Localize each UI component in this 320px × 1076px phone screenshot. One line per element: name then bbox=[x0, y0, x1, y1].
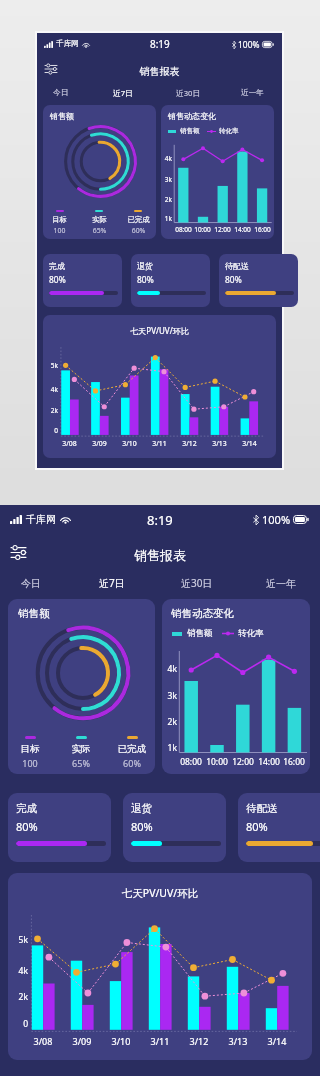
staticText: 退货 bbox=[137, 261, 154, 271]
staticText: 80% bbox=[49, 274, 66, 285]
staticText: 3/14 bbox=[237, 439, 262, 448]
staticText: 近7日 bbox=[113, 88, 133, 98]
staticText: 12:00 bbox=[229, 756, 257, 768]
staticText: 销售额 bbox=[180, 127, 200, 135]
button[interactable]: 待配送 bbox=[238, 793, 320, 862]
staticText: 近7日 bbox=[99, 576, 125, 590]
staticText: 销售报表 bbox=[0, 547, 320, 563]
staticText: 七天PV/UV/环比 bbox=[8, 886, 312, 900]
staticText: 3/14 bbox=[261, 1035, 293, 1047]
button[interactable]: 今日 bbox=[41, 84, 81, 102]
staticText: 转化率 bbox=[238, 628, 264, 639]
staticText: 80% bbox=[246, 819, 268, 834]
button[interactable]: 今日 bbox=[5, 571, 57, 595]
staticText: 4k bbox=[47, 385, 58, 394]
button[interactable]: 退货 bbox=[123, 793, 226, 862]
staticText: 3/12 bbox=[177, 439, 202, 448]
staticText: 5k bbox=[47, 361, 58, 370]
button[interactable]: 近30日 bbox=[171, 571, 223, 595]
staticText: 100% bbox=[238, 39, 260, 50]
staticText: 目标 bbox=[8, 743, 54, 755]
staticText: 4k bbox=[13, 965, 28, 977]
button[interactable]: 近一年 bbox=[255, 571, 307, 595]
button[interactable]: 完成 bbox=[8, 793, 111, 862]
staticText: 千库网 bbox=[56, 39, 79, 49]
staticText: 10:00 bbox=[192, 225, 213, 234]
staticText: 65% bbox=[57, 757, 105, 769]
staticText: 3/10 bbox=[117, 439, 142, 448]
staticText: 08:00 bbox=[177, 756, 205, 768]
staticText: 销售额 bbox=[50, 111, 75, 121]
staticText: 3k bbox=[162, 175, 172, 184]
staticText: 待配送 bbox=[225, 261, 250, 271]
staticText: 千库网 bbox=[26, 513, 56, 526]
staticText: 3/08 bbox=[27, 1035, 59, 1047]
staticText: 08:00 bbox=[173, 225, 194, 234]
staticText: 0 bbox=[47, 426, 58, 435]
staticText: 2k bbox=[47, 406, 58, 415]
staticText: 销售额 bbox=[187, 628, 213, 639]
staticText: 销售报表 bbox=[37, 65, 282, 78]
staticText: 3/13 bbox=[207, 439, 232, 448]
staticText: 16:00 bbox=[252, 225, 273, 234]
staticText: 3/08 bbox=[57, 439, 82, 448]
staticText: 目标 bbox=[43, 215, 78, 224]
staticText: 1k bbox=[162, 214, 172, 223]
staticText: 100% bbox=[262, 512, 291, 527]
staticText: 100 bbox=[8, 757, 54, 769]
staticText: 5k bbox=[13, 934, 28, 946]
button[interactable]: 完成 bbox=[43, 254, 122, 307]
staticText: 销售额 bbox=[18, 607, 50, 620]
staticText: 0 bbox=[13, 1018, 28, 1030]
staticText: 待配送 bbox=[246, 802, 278, 815]
staticText: 80% bbox=[137, 274, 154, 285]
staticText: 2k bbox=[163, 716, 177, 728]
staticText: 65% bbox=[81, 226, 118, 235]
button[interactable]: 销售动态变化 bbox=[161, 105, 274, 239]
staticText: 10:00 bbox=[203, 756, 231, 768]
staticText: 80% bbox=[16, 819, 38, 834]
staticText: 8:19 bbox=[147, 511, 173, 529]
staticText: 60% bbox=[120, 226, 156, 235]
staticText: 3k bbox=[163, 690, 177, 702]
button[interactable]: 销售动态变化 bbox=[162, 599, 310, 774]
staticText: 60% bbox=[108, 757, 155, 769]
staticText: 销售动态变化 bbox=[168, 111, 217, 121]
button[interactable]: 近7日 bbox=[86, 571, 138, 595]
staticText: 实际 bbox=[57, 743, 105, 755]
staticText: 16:00 bbox=[280, 756, 308, 768]
staticText: 3/09 bbox=[87, 439, 112, 448]
staticText: 近30日 bbox=[181, 576, 213, 590]
button[interactable]: 退货 bbox=[131, 254, 210, 307]
staticText: 今日 bbox=[53, 88, 69, 98]
staticText: 转化率 bbox=[219, 127, 239, 135]
staticText: 今日 bbox=[21, 577, 41, 590]
staticText: 4k bbox=[162, 154, 172, 163]
staticText: 3/09 bbox=[66, 1035, 98, 1047]
staticText: 8:19 bbox=[150, 37, 170, 51]
button[interactable]: 七天PV/UV/环比 bbox=[43, 315, 276, 458]
button[interactable]: 销售额 bbox=[43, 105, 156, 239]
staticText: 3/11 bbox=[147, 439, 172, 448]
staticText: 近30日 bbox=[176, 88, 201, 98]
button[interactable]: 近一年 bbox=[232, 84, 272, 102]
staticText: 100 bbox=[43, 226, 78, 235]
staticText: 3/10 bbox=[105, 1035, 137, 1047]
staticText: 完成 bbox=[16, 802, 37, 815]
staticText: 实际 bbox=[81, 215, 118, 224]
button[interactable]: 销售额 bbox=[8, 599, 155, 774]
button[interactable]: 七天PV/UV/环比 bbox=[8, 873, 312, 1060]
button[interactable]: Filter options bbox=[8, 542, 29, 563]
button[interactable]: 近30日 bbox=[168, 84, 208, 102]
button[interactable]: 近7日 bbox=[103, 84, 143, 102]
staticText: 2k bbox=[13, 991, 28, 1003]
staticText: 销售动态变化 bbox=[171, 607, 234, 620]
staticText: 80% bbox=[131, 819, 153, 834]
staticText: 3/12 bbox=[183, 1035, 215, 1047]
staticText: 3/11 bbox=[144, 1035, 176, 1047]
staticText: 已完成 bbox=[120, 215, 156, 224]
staticText: 14:00 bbox=[255, 756, 283, 768]
button[interactable]: Filter options bbox=[43, 61, 59, 77]
button[interactable]: 待配送 bbox=[219, 254, 298, 307]
staticText: 退货 bbox=[131, 802, 152, 815]
